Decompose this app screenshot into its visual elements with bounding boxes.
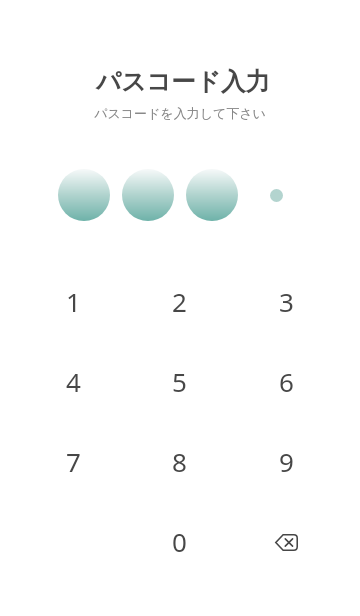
button[interactable]: 5 (126, 341, 233, 421)
staticText: パスコード入力 (3, 66, 360, 97)
staticText: 5 (172, 364, 187, 399)
button[interactable]: 3 (233, 261, 340, 341)
staticText: 4 (66, 364, 81, 399)
button[interactable]: 4 (20, 341, 126, 421)
button[interactable]: 2 (126, 261, 233, 341)
staticText: 9 (279, 444, 294, 479)
button[interactable]: 6 (233, 341, 340, 421)
button[interactable]: 8 (126, 421, 233, 501)
staticText: 2 (172, 284, 187, 319)
staticText: パスコードを入力して下さい (0, 105, 360, 121)
button[interactable]: 9 (233, 421, 340, 501)
button[interactable]: Delete (233, 501, 340, 581)
staticText: 8 (172, 444, 187, 479)
staticText: 6 (279, 364, 294, 399)
staticText: 1 (66, 284, 81, 319)
button[interactable]: 0 (126, 501, 233, 581)
staticText: 7 (66, 444, 81, 479)
staticText: 0 (172, 524, 187, 559)
button[interactable]: 1 (20, 261, 126, 341)
button[interactable]: 7 (20, 421, 126, 501)
staticText: 3 (279, 284, 294, 319)
